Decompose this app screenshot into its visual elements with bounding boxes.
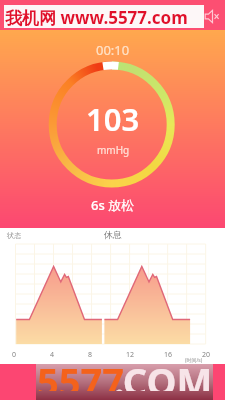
staticText: 休息 [104, 229, 122, 240]
staticText: 16 [164, 350, 173, 360]
staticText: 00:10 [96, 41, 130, 59]
staticText: mmHg [97, 143, 130, 157]
staticText: 6s 放松 [91, 196, 135, 214]
staticText: 我机网 www.5577.com [5, 6, 188, 29]
staticText: 4 [50, 350, 55, 360]
staticText: 8 [88, 350, 93, 360]
staticText: 12 [126, 350, 135, 360]
staticText: 5577 [37, 355, 124, 391]
staticText: 0 [12, 350, 17, 360]
staticText: (时间/s) [185, 357, 203, 364]
staticText: .COM [114, 355, 213, 391]
staticText: 状态 [7, 231, 21, 240]
staticText: 20 [202, 350, 211, 360]
other: Mute [204, 8, 221, 25]
staticText: 103 [86, 98, 140, 140]
